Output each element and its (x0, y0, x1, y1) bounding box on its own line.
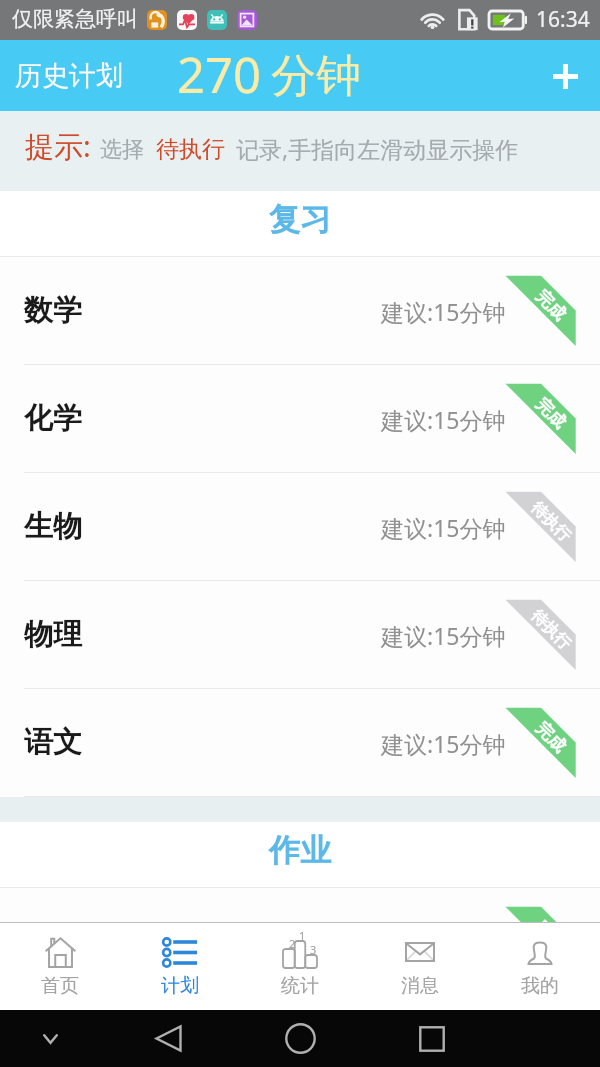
staticText: 首页 (41, 974, 79, 998)
staticText: 历史计划 (15, 59, 123, 93)
staticText: 提示: (25, 126, 91, 166)
staticText: 生物 (24, 508, 82, 545)
button[interactable]: 添加计划 (541, 52, 589, 100)
staticText: 3 (310, 942, 317, 957)
staticText: 1 (299, 928, 306, 943)
staticText: 仅限紧急呼叫 (12, 6, 138, 32)
staticText: 记录,手指向左滑动显示操作 (236, 133, 519, 164)
staticText: 分钟 (271, 48, 361, 105)
staticText: 计划 (161, 974, 199, 998)
staticText: 完成 (532, 917, 570, 922)
staticText: 建议:15分钟 (381, 296, 506, 327)
staticText: 待执行 (527, 606, 575, 654)
staticText: 2 (289, 936, 296, 951)
button[interactable]: 生物 (0, 473, 600, 581)
staticText: 建议:15分钟 (381, 404, 506, 435)
staticText: 语文 (24, 724, 82, 761)
button[interactable]: 返回 (132, 1010, 204, 1067)
button[interactable]: 最近任务 (396, 1010, 468, 1067)
staticText: 完成 (532, 394, 570, 433)
staticText: 物理 (24, 616, 82, 653)
staticText: 完成 (532, 286, 570, 325)
staticText: 完成 (532, 718, 570, 757)
staticText: 化学 (24, 400, 82, 437)
button[interactable]: 语文 (0, 689, 600, 797)
staticText: 建议:15分钟 (381, 512, 506, 543)
staticText: 消息 (401, 974, 439, 998)
button[interactable]: 数学 (0, 257, 600, 365)
staticText: 建议:15分钟 (381, 728, 506, 759)
button[interactable]: 物理 (0, 581, 600, 689)
staticText: 16:34 (536, 5, 590, 34)
button[interactable]: 化学 (0, 365, 600, 473)
staticText: 待执行 (527, 498, 575, 546)
button[interactable]: 消息 (360, 922, 480, 1010)
staticText: 建议:15分钟 (381, 620, 506, 651)
button[interactable]: 主屏幕 (264, 1010, 336, 1067)
staticText: 待执行 (156, 135, 225, 164)
button[interactable]: 2 (240, 922, 360, 1010)
button[interactable]: 收起 (18, 1010, 82, 1067)
button[interactable]: 英语 (0, 888, 600, 922)
staticText: 选择 (100, 136, 144, 164)
button[interactable]: 计划 (120, 922, 240, 1010)
staticText: 复习 (269, 200, 331, 239)
staticText: 我的 (521, 974, 559, 998)
staticText: 统计 (281, 974, 319, 998)
staticText: 数学 (24, 292, 82, 329)
button[interactable]: 我的 (480, 922, 600, 1010)
staticText: 作业 (269, 831, 331, 870)
button[interactable]: 首页 (0, 922, 120, 1010)
staticText: 270 (177, 41, 262, 108)
